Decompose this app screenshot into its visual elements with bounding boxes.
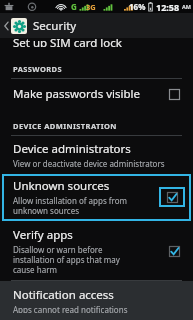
staticText: PASSWORDS [13,64,62,74]
other: Checked [167,192,178,203]
staticText: View or deactivate device administrators [13,158,165,169]
button[interactable]: Notification access [0,281,193,320]
staticText: AM [182,3,191,10]
staticText: Security [33,18,77,34]
staticText: Allow installation of apps from unknown … [13,195,128,216]
staticText: Notification access [13,287,114,303]
button[interactable]: Set up SIM card lock [0,38,193,50]
staticText: Make passwords visible [13,86,140,102]
staticText: Set up SIM card lock [13,35,122,47]
staticText: Disallow or warn before installation of … [13,244,120,275]
staticText: 16% [129,1,146,12]
button[interactable]: Device administrators [0,136,193,173]
staticText: Device administrators [13,141,131,157]
staticText: DEVICE ADMINISTRATION [13,121,117,131]
button[interactable]: Verify apps [0,222,193,280]
button[interactable]: Navigate up, Security [0,13,193,38]
button[interactable]: Unknown sources [2,174,191,221]
other: Checked [169,246,180,257]
staticText: Apps cannot read notifications [13,304,128,313]
staticText: Verify apps [13,227,73,243]
staticText: G [71,1,77,12]
staticText: 12:58 [156,1,180,13]
other: Unchecked [169,89,180,100]
staticText: Unknown sources [13,178,110,194]
button[interactable]: Make passwords visible [0,79,193,109]
staticText: 3G [86,2,96,12]
